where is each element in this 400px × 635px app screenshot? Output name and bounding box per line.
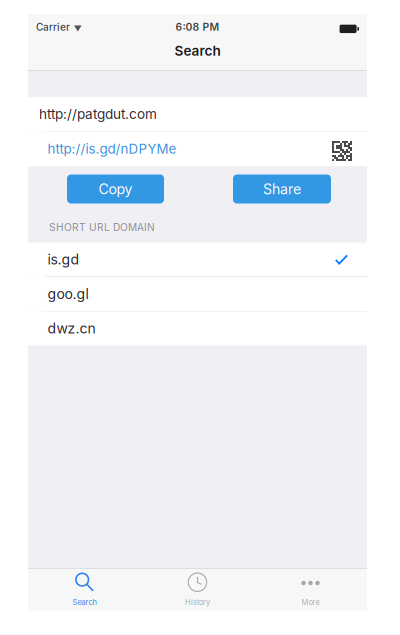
button[interactable]: History (141, 568, 254, 611)
staticText: More (301, 598, 319, 607)
staticText: History (185, 598, 210, 607)
staticText: goo.gl (47, 285, 88, 302)
staticText: is.gd (47, 251, 79, 268)
button[interactable]: Copy (67, 174, 164, 203)
staticText: dwz.cn (47, 320, 95, 337)
staticText: Copy (98, 180, 132, 197)
staticText: 6:08 PM (175, 21, 219, 33)
staticText: Share (263, 180, 301, 197)
staticText: http://is.gd/nDPYMe (47, 141, 176, 157)
button[interactable]: Share (233, 174, 331, 203)
button[interactable]: goo.gl (28, 277, 367, 311)
staticText: Search (72, 598, 96, 607)
staticText: SHORT URL DOMAIN (49, 221, 155, 233)
staticText: http://patgdut.com (39, 106, 157, 122)
button[interactable]: More (254, 568, 367, 611)
button[interactable]: dwz.cn (28, 311, 367, 345)
button[interactable]: Search (28, 568, 141, 611)
staticText: Search (174, 42, 220, 59)
button[interactable]: is.gd (28, 242, 367, 276)
staticText: Carrier (36, 21, 70, 33)
